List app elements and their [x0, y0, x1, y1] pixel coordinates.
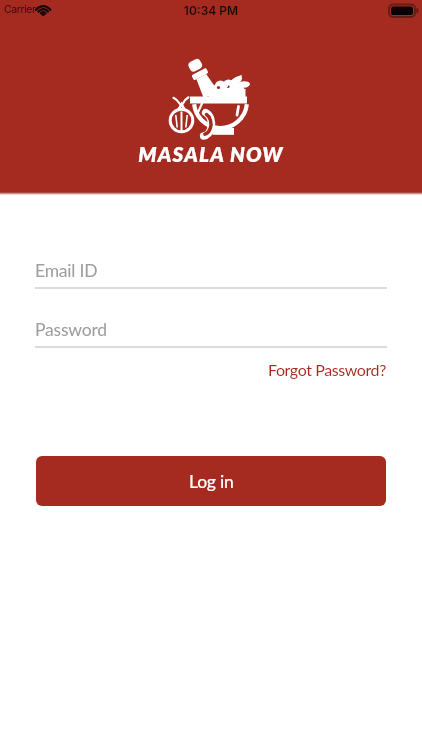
staticText: Forgot Password?: [268, 360, 386, 379]
button[interactable]: Log in: [36, 456, 386, 506]
staticText: Password: [35, 319, 107, 340]
button[interactable]: Forgot Password?: [160, 357, 386, 381]
staticText: Carrier: [4, 3, 36, 16]
button[interactable]: Email ID: [35, 258, 387, 290]
staticText: MASALA NOW: [0, 142, 422, 167]
staticText: Log in: [189, 471, 234, 492]
staticText: Email ID: [35, 260, 98, 281]
button[interactable]: Password: [35, 317, 387, 349]
staticText: 10:34 PM: [0, 3, 422, 18]
